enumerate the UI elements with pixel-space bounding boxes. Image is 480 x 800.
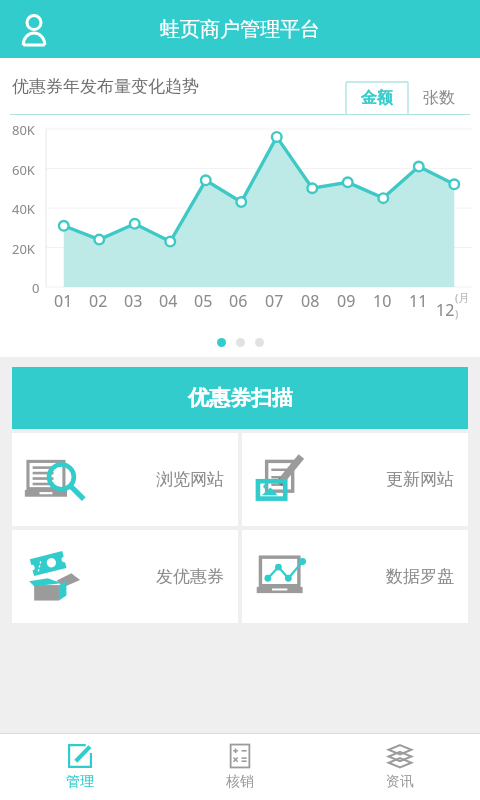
staticText: 03: [124, 290, 143, 312]
button[interactable]: 张数: [408, 82, 470, 114]
staticText: 40K: [12, 200, 35, 218]
staticText: 蛙页商户管理平台: [160, 17, 320, 42]
staticText: 11: [409, 290, 428, 312]
staticText: 0: [32, 279, 40, 297]
staticText: 管理: [66, 773, 94, 791]
staticText: 发优惠券: [156, 566, 224, 587]
staticText: 06: [229, 290, 248, 312]
button[interactable]: 资讯: [320, 734, 480, 800]
staticText: 20K: [12, 240, 35, 258]
staticText: 10: [373, 290, 392, 312]
button[interactable]: 管理: [0, 734, 160, 800]
staticText: 数据罗盘: [386, 566, 454, 587]
button[interactable]: 发优惠券: [12, 530, 238, 623]
button[interactable]: 金额: [346, 82, 408, 114]
staticText: 浏览网站: [156, 469, 224, 490]
staticText: 60K: [12, 161, 35, 179]
staticText: 资讯: [386, 773, 414, 791]
staticText: 金额: [361, 88, 393, 108]
staticText: 08: [301, 290, 320, 312]
button[interactable]: 优惠券扫描: [12, 367, 468, 429]
staticText: 12: [436, 299, 455, 321]
button[interactable]: Profile: [14, 9, 54, 49]
staticText: 核销: [226, 773, 254, 791]
staticText: 01: [54, 290, 73, 312]
staticText: 80K: [12, 121, 35, 139]
staticText: 张数: [423, 88, 455, 108]
staticText: 02: [89, 290, 108, 312]
staticText: 优惠券扫描: [188, 385, 293, 411]
button[interactable]: 数据罗盘: [242, 530, 468, 623]
staticText: 04: [159, 290, 178, 312]
staticText: 优惠券年发布量变化趋势: [12, 76, 199, 97]
staticText: 09: [337, 290, 356, 312]
button[interactable]: 核销: [160, 734, 320, 800]
staticText: 07: [265, 290, 284, 312]
staticText: 05: [194, 290, 213, 312]
button[interactable]: 浏览网站: [12, 433, 238, 526]
staticText: 更新网站: [386, 469, 454, 490]
staticText: (月): [455, 290, 472, 321]
button[interactable]: 更新网站: [242, 433, 468, 526]
